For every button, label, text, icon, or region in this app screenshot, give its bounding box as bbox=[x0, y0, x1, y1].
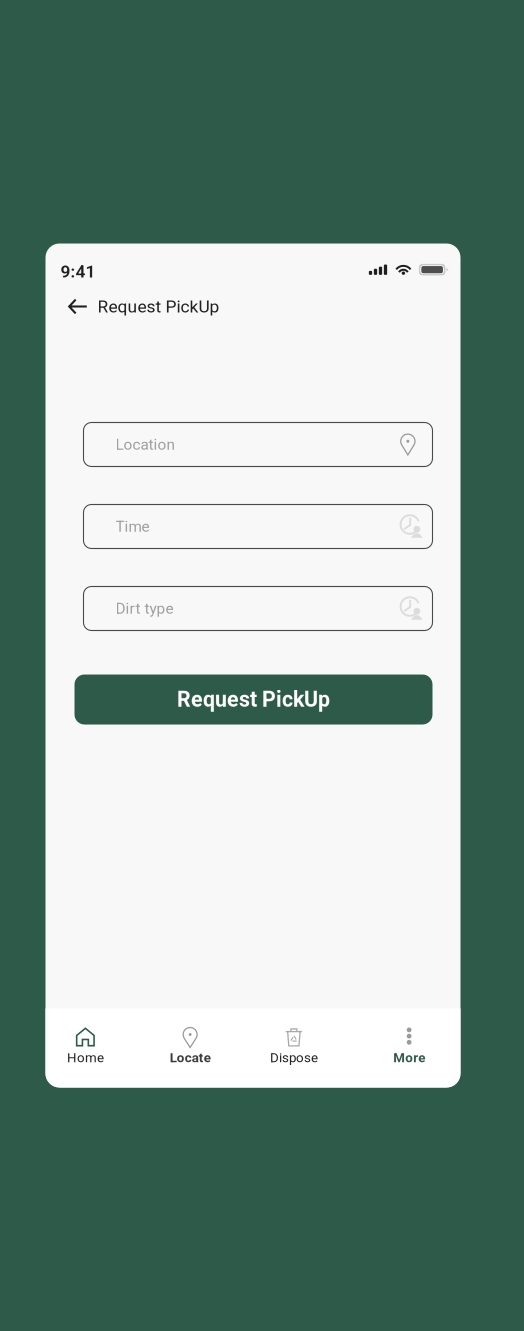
button[interactable]: Dirt type bbox=[83, 586, 432, 630]
button[interactable]: More bbox=[357, 1027, 461, 1065]
button[interactable]: Dispose bbox=[253, 1027, 357, 1065]
button[interactable]: Location bbox=[83, 422, 432, 466]
staticText: More bbox=[393, 1050, 425, 1065]
staticText: Locate bbox=[170, 1050, 211, 1065]
staticText: Time bbox=[115, 517, 149, 535]
staticText: Location bbox=[115, 435, 174, 453]
button[interactable]: Time bbox=[83, 504, 432, 548]
button[interactable]: Locate bbox=[149, 1027, 253, 1065]
staticText: Request PickUp bbox=[177, 687, 330, 712]
staticText: Home bbox=[67, 1050, 104, 1065]
staticText: Dispose bbox=[270, 1050, 318, 1065]
staticText: Dirt type bbox=[115, 599, 173, 617]
staticText: Request PickUp bbox=[97, 296, 219, 317]
button[interactable]: Home bbox=[45, 1027, 149, 1065]
staticText: 9:41 bbox=[60, 261, 95, 282]
button[interactable]: Request PickUp bbox=[74, 674, 432, 724]
button[interactable]: Back bbox=[62, 293, 92, 319]
